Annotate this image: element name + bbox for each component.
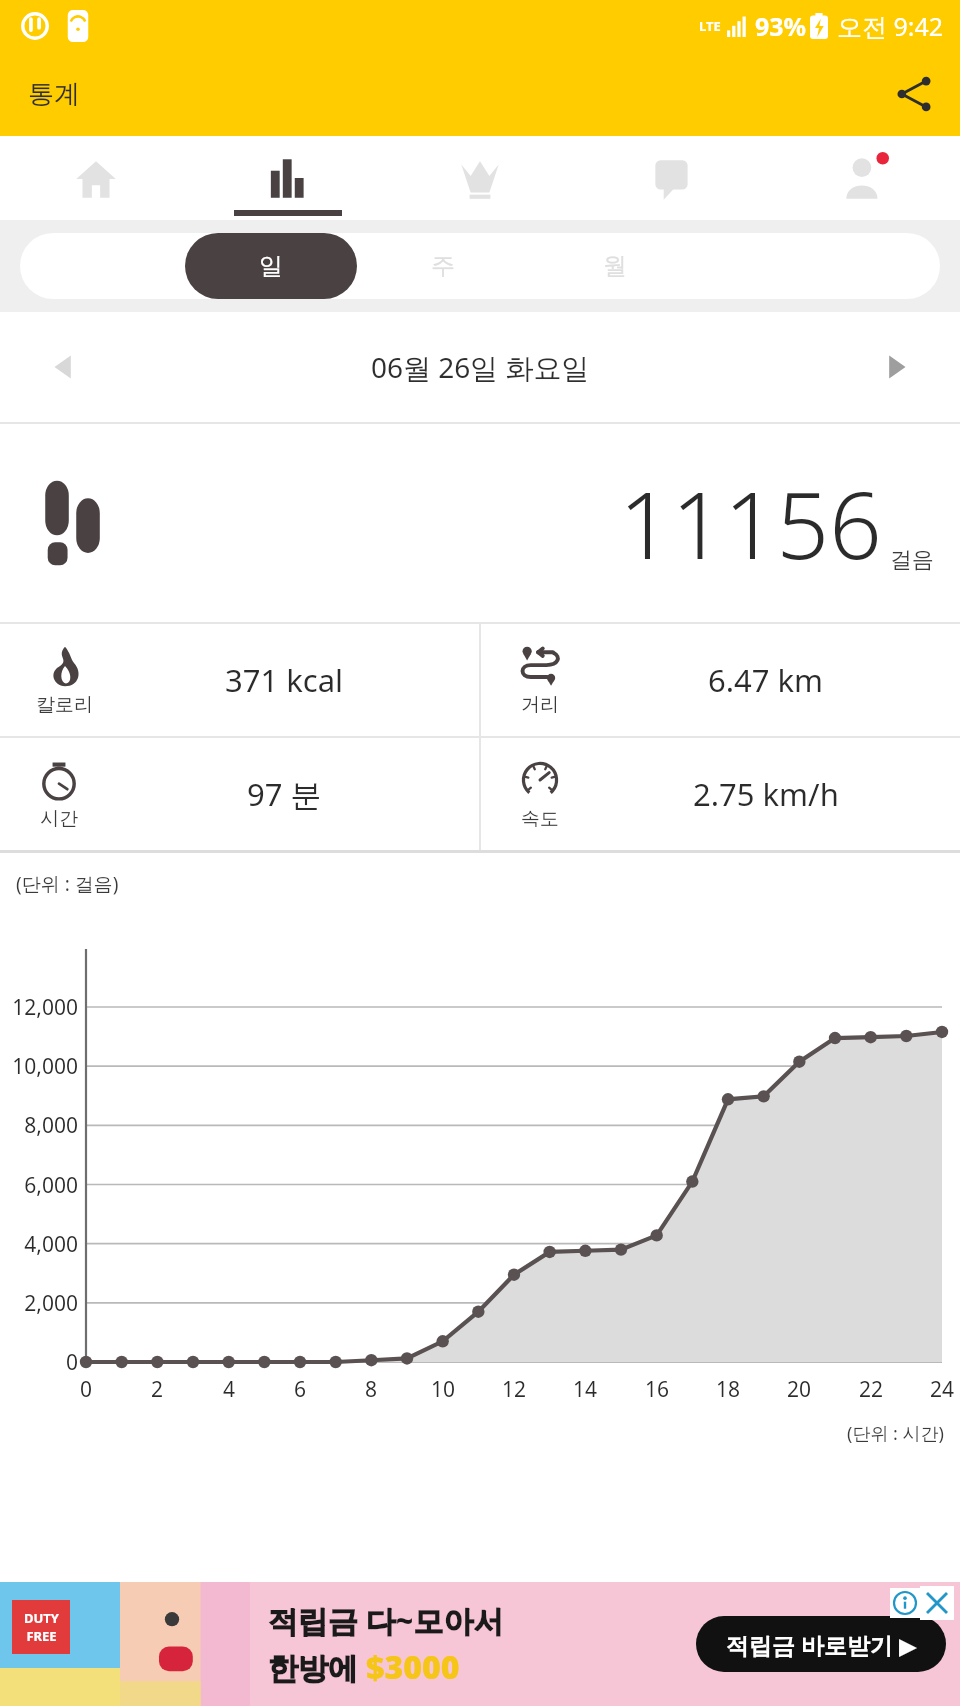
staticText: 2,000 xyxy=(0,1289,78,1318)
button[interactable]: Close ad xyxy=(920,1586,954,1620)
button[interactable]: Previous day xyxy=(36,339,92,395)
staticText: 8,000 xyxy=(0,1111,78,1140)
button[interactable]: 적립금 바로받기 ▶ xyxy=(696,1616,946,1672)
staticText: 97 분 xyxy=(247,773,322,815)
button[interactable]: 일 xyxy=(185,233,357,299)
button[interactable]: Ad info xyxy=(890,1588,920,1618)
staticText: 0 xyxy=(0,1348,78,1377)
staticText: 10 xyxy=(423,1375,463,1404)
button[interactable]: Statistics xyxy=(192,136,384,220)
staticText: 2.75 km/h xyxy=(693,773,839,815)
staticText: 6.47 km xyxy=(708,659,824,701)
staticText: 거리 xyxy=(521,693,559,717)
button[interactable]: Profile xyxy=(768,136,960,220)
button[interactable]: 시간 xyxy=(0,738,479,850)
staticText: 적립금 바로받기 ▶ xyxy=(726,1629,917,1660)
staticText: 0 xyxy=(66,1375,106,1404)
staticText: 통계 xyxy=(28,78,80,111)
staticText: (단위 : 시간) xyxy=(847,1421,944,1446)
button[interactable]: Chat xyxy=(576,136,768,220)
staticText: DUTY FREE xyxy=(24,1609,59,1645)
staticText: 6,000 xyxy=(0,1171,78,1200)
staticText: 속도 xyxy=(521,807,559,831)
staticText: LTE xyxy=(699,17,721,35)
staticText: 18 xyxy=(708,1375,748,1404)
staticText: 적립금 다~모아서 xyxy=(268,1600,504,1641)
staticText: 10,000 xyxy=(0,1052,78,1081)
staticText: 시간 xyxy=(40,807,78,831)
staticText: (단위 : 걸음) xyxy=(16,871,119,897)
staticText: 월 xyxy=(603,251,627,281)
button[interactable]: Share xyxy=(886,66,942,122)
staticText: 371 kcal xyxy=(225,659,344,701)
staticText: 12,000 xyxy=(0,993,78,1022)
button[interactable]: Next day xyxy=(868,339,924,395)
staticText: 14 xyxy=(565,1375,605,1404)
staticText: 11156 xyxy=(619,461,882,586)
staticText: 일 xyxy=(259,251,283,281)
button[interactable]: 칼로리 xyxy=(0,624,479,736)
button[interactable]: 월 xyxy=(529,233,701,299)
staticText: 4,000 xyxy=(0,1230,78,1259)
staticText: 12 xyxy=(494,1375,534,1404)
button[interactable]: 속도 xyxy=(481,738,960,850)
staticText: 06월 26일 화요일 xyxy=(371,348,590,386)
staticText: 주 xyxy=(431,251,455,281)
staticText: 93% xyxy=(755,9,807,43)
button[interactable]: 주 xyxy=(357,233,529,299)
staticText: 6 xyxy=(280,1375,320,1404)
staticText: 24 xyxy=(922,1375,960,1404)
button[interactable]: Ranking xyxy=(384,136,576,220)
staticText: 한방에 xyxy=(268,1647,366,1688)
button[interactable]: Home xyxy=(0,136,192,220)
staticText: 칼로리 xyxy=(36,693,93,717)
staticText: 8 xyxy=(351,1375,391,1404)
staticText: 4 xyxy=(209,1375,249,1404)
staticText: 오전 9:42 xyxy=(837,9,944,43)
staticText: $3000 xyxy=(366,1645,460,1689)
staticText: 걸음 xyxy=(890,546,934,574)
staticText: 2 xyxy=(137,1375,177,1404)
button[interactable]: 거리 xyxy=(481,624,960,736)
staticText: 16 xyxy=(637,1375,677,1404)
staticText: 20 xyxy=(779,1375,819,1404)
staticText: 22 xyxy=(851,1375,891,1404)
